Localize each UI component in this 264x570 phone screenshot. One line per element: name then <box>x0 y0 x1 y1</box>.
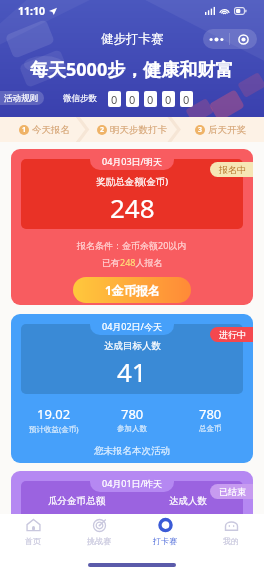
other: 我的 <box>224 518 239 533</box>
staticText: 2 <box>100 125 105 135</box>
button[interactable]: 挑战赛 <box>66 514 132 554</box>
staticText: 活动规则 <box>4 93 38 104</box>
staticText: 报名条件：金币余额20以内 <box>77 239 187 251</box>
staticText: 后天开奖 <box>208 124 246 136</box>
button[interactable]: 活动规则 <box>0 91 44 105</box>
staticText: 0 <box>129 92 136 107</box>
staticText: 04月02日/今天 <box>102 320 162 332</box>
staticText: 预计收益(金币) <box>29 424 79 434</box>
button[interactable]: 1金币报名 <box>73 277 191 303</box>
staticText: 04月01日/昨天 <box>102 477 162 489</box>
staticText: 进行中 <box>219 329 246 340</box>
staticText: 报名中 <box>219 164 246 175</box>
other: 打卡赛 <box>158 518 173 533</box>
staticText: 780 <box>199 405 222 423</box>
staticText: 打卡赛 <box>153 536 177 546</box>
staticText: 780 <box>121 405 144 423</box>
other: 挑战赛 <box>92 518 107 533</box>
staticText: 41 <box>117 354 147 389</box>
staticText: 我的 <box>223 536 239 546</box>
staticText: 每天5000步，健康和财富 <box>30 57 234 82</box>
staticText: 明天步数打卡 <box>110 124 167 136</box>
staticText: 达成目标人数 <box>104 340 161 352</box>
staticText: 04月03日/明天 <box>102 155 162 167</box>
staticText: 248 <box>110 190 155 225</box>
staticText: 3 <box>198 125 203 135</box>
staticText: 1金币报名 <box>105 282 160 298</box>
staticText: 您未报名本次活动 <box>94 445 170 457</box>
other: 首页 <box>26 518 41 533</box>
staticText: 首页 <box>25 536 41 546</box>
staticText: 已结束 <box>219 486 246 497</box>
button[interactable]: More options <box>203 29 257 49</box>
staticText: 微信步数 <box>63 93 97 104</box>
staticText: 0 <box>183 92 190 107</box>
button[interactable]: 2 <box>88 117 176 142</box>
staticText: 参加人数 <box>117 424 147 433</box>
staticText: 11:10 <box>18 4 45 18</box>
staticText: 奖励总金额(金币) <box>96 175 169 188</box>
staticText: 0 <box>165 92 172 107</box>
button[interactable]: 1 <box>0 117 88 142</box>
staticText: 19.02 <box>37 405 71 423</box>
button[interactable]: 首页 <box>0 514 66 554</box>
staticText: 挑战赛 <box>87 536 111 546</box>
staticText: 达成人数 <box>169 495 207 507</box>
button[interactable]: 我的 <box>198 514 264 554</box>
button[interactable]: 3 <box>176 117 264 142</box>
staticText: 0 <box>111 92 118 107</box>
staticText: 今天报名 <box>32 124 70 136</box>
staticText: 0 <box>147 92 154 107</box>
staticText: 健步打卡赛 <box>101 31 164 47</box>
staticText: 总金币 <box>199 424 222 433</box>
staticText: 已有248人报名 <box>102 256 163 268</box>
staticText: 1 <box>22 125 27 135</box>
button[interactable]: 打卡赛 <box>132 514 198 554</box>
staticText: 瓜分金币总额 <box>48 495 105 507</box>
